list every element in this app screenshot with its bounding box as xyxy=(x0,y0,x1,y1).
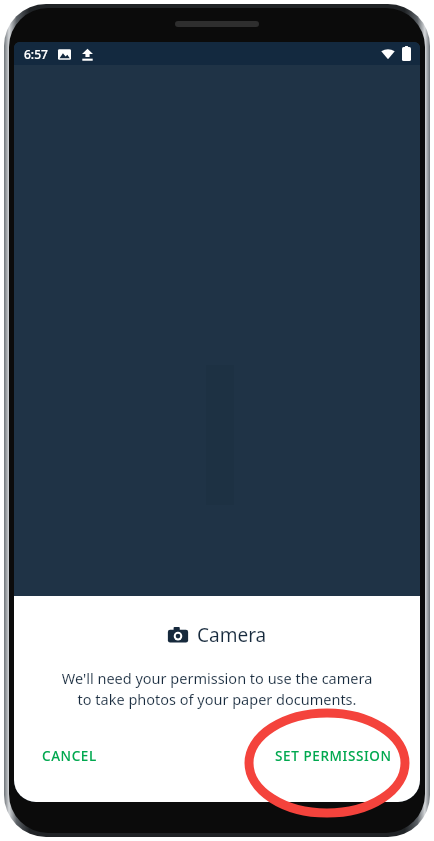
staticText: CANCEL xyxy=(42,747,97,765)
staticText: 6:57 xyxy=(24,46,48,62)
staticText: Camera xyxy=(197,622,267,648)
button[interactable]: CANCEL xyxy=(30,739,109,773)
staticText: We'll need your permission to use the ca… xyxy=(28,668,406,710)
staticText: SET PERMISSION xyxy=(275,747,392,765)
button[interactable]: SET PERMISSION xyxy=(263,739,404,773)
